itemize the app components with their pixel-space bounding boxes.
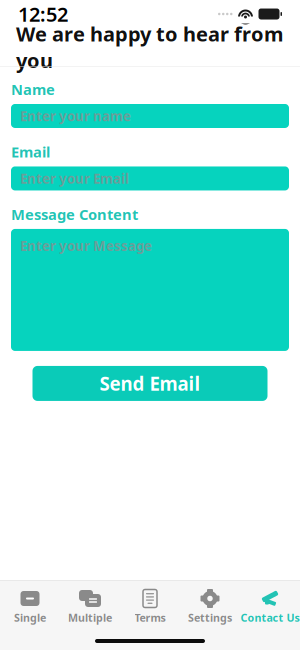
staticText: Terms bbox=[134, 610, 165, 625]
staticText: Email bbox=[11, 142, 50, 161]
staticText: We are happy to hear from you bbox=[16, 20, 284, 73]
staticText: Message Content bbox=[11, 204, 138, 224]
button[interactable]: Settings bbox=[180, 584, 240, 630]
button[interactable]: Terms bbox=[120, 584, 180, 630]
staticText: Multiple bbox=[68, 610, 112, 625]
staticText: Enter your name bbox=[20, 107, 131, 125]
button[interactable]: Single bbox=[0, 584, 60, 630]
staticText: Enter your Message bbox=[20, 237, 152, 255]
button[interactable]: Multiple bbox=[60, 584, 120, 630]
staticText: Send Email bbox=[99, 371, 200, 396]
staticText: Single bbox=[14, 610, 46, 625]
button[interactable]: Contact Us bbox=[240, 584, 300, 630]
staticText: Name bbox=[11, 79, 55, 99]
button[interactable]: Send Email bbox=[32, 366, 267, 401]
staticText: Settings bbox=[188, 610, 232, 625]
staticText: Contact Us bbox=[240, 610, 299, 625]
staticText: Enter your Email bbox=[20, 170, 129, 187]
staticText: 12:52 bbox=[18, 1, 68, 27]
